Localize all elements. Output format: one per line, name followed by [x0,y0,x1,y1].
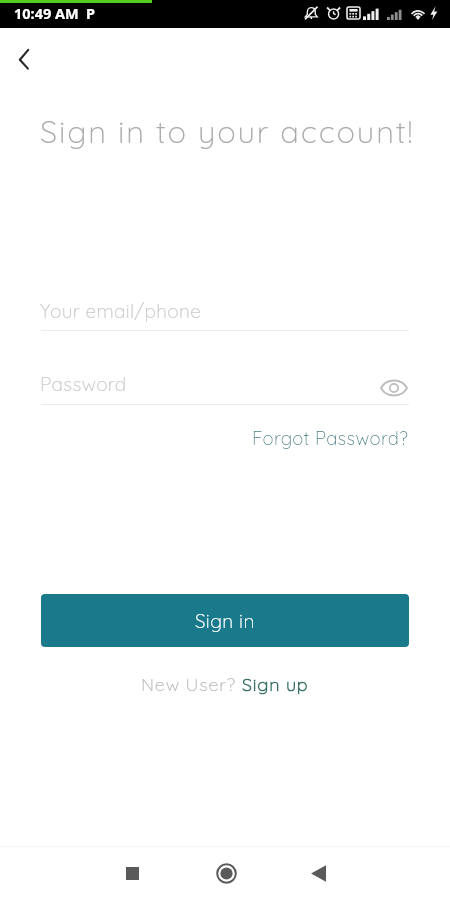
staticText: P [86,3,96,23]
button[interactable]: Home [204,851,248,895]
button[interactable]: Back [295,851,339,895]
button[interactable]: Show password [376,370,412,406]
button[interactable]: Recents [110,851,154,895]
button[interactable]: Sign up [242,673,309,696]
button[interactable]: Back [0,35,48,83]
staticText: Sign in [195,609,255,633]
staticText: Sign up [242,673,309,696]
staticText: Your email/phone [40,299,202,323]
button[interactable]: Sign in [41,594,409,647]
staticText: Password [40,372,127,396]
staticText: 10:49 AM [14,3,79,23]
staticText: Sign in to your account! [40,112,415,151]
staticText: New User? [141,673,242,696]
button[interactable]: Forgot Password? [250,424,411,451]
staticText: Forgot Password? [252,426,409,449]
